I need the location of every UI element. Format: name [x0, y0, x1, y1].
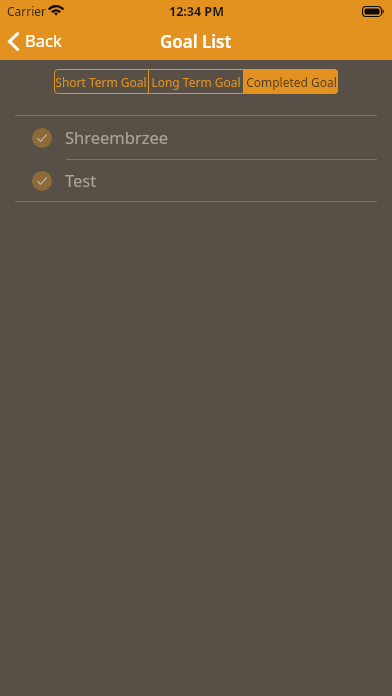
staticText: Back: [25, 29, 62, 51]
button[interactable]: Mark goal complete: [0, 116, 392, 159]
staticText: Shreembrzee: [65, 126, 169, 148]
button[interactable]: Completed Goal: [244, 69, 338, 94]
button[interactable]: Short Term Goal: [54, 69, 148, 94]
staticText: Goal List: [160, 30, 232, 53]
button[interactable]: Back: [0, 26, 72, 56]
staticText: Test: [65, 169, 97, 191]
button[interactable]: Mark goal complete: [0, 160, 392, 201]
staticText: 12:34 PM: [169, 3, 224, 20]
button[interactable]: Mark goal complete: [32, 128, 52, 148]
staticText: Carrier: [7, 3, 47, 19]
button[interactable]: Long Term Goal: [149, 69, 243, 94]
staticText: Long Term Goal: [151, 74, 241, 90]
button[interactable]: Mark goal complete: [32, 171, 52, 191]
staticText: Completed Goal: [246, 74, 337, 90]
staticText: Short Term Goal: [55, 74, 147, 90]
